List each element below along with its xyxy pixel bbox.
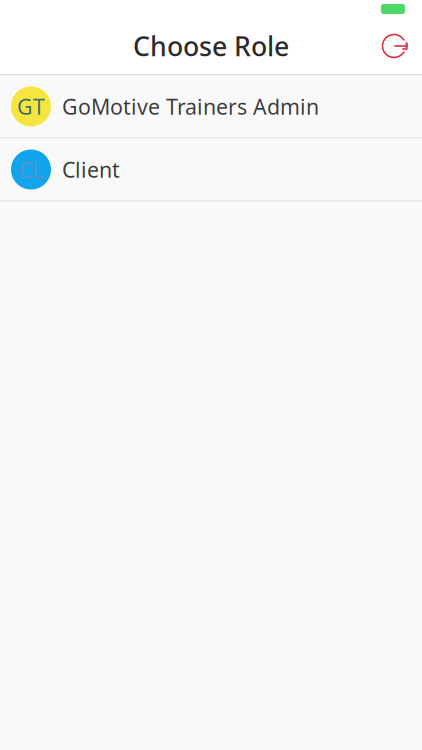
staticText: GT	[17, 92, 45, 121]
button[interactable]: CL	[0, 138, 422, 200]
staticText: Choose Role	[133, 28, 289, 64]
staticText: Client	[62, 155, 120, 184]
staticText: GoMotive Trainers Admin	[62, 92, 319, 121]
button[interactable]: GT	[0, 75, 422, 137]
button[interactable]: Log out	[372, 24, 416, 68]
staticText: CL	[19, 155, 43, 184]
